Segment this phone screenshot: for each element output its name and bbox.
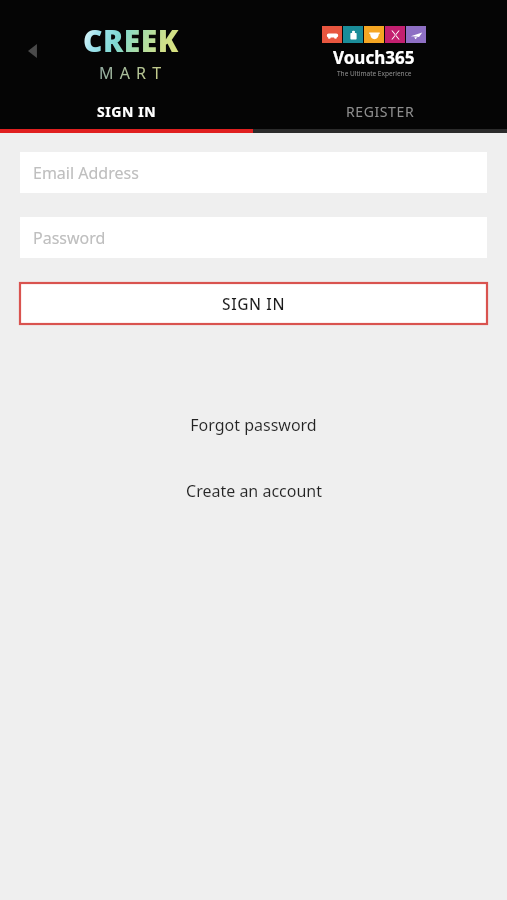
staticText: SIGN IN [222, 293, 286, 314]
button[interactable]: Email Address [20, 152, 487, 193]
staticText: CREEK [83, 20, 179, 61]
button[interactable]: Forgot password [0, 412, 507, 438]
staticText: The Ultimate Experience [337, 69, 412, 78]
button[interactable]: SIGN IN [20, 283, 487, 324]
staticText: Forgot password [190, 414, 317, 436]
staticText: Vouch365 [333, 46, 415, 69]
staticText: Email Address [33, 162, 139, 184]
staticText: SIGN IN [97, 102, 157, 121]
staticText: Password [33, 227, 106, 249]
staticText: M A R T [99, 62, 163, 84]
button[interactable]: Back [14, 32, 52, 70]
button[interactable]: Create an account [0, 478, 507, 504]
button[interactable]: REGISTER [253, 90, 507, 133]
button[interactable]: Password [20, 217, 487, 258]
staticText: Create an account [186, 480, 322, 502]
button[interactable]: SIGN IN [0, 90, 253, 133]
staticText: REGISTER [346, 102, 415, 121]
